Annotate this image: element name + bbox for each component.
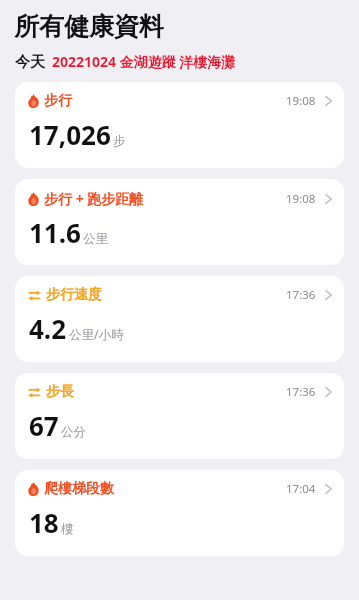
staticText: 所有健康資料 (14, 11, 164, 42)
other: Open details (325, 289, 332, 301)
other: Open details (325, 95, 332, 107)
other: Open details (325, 483, 332, 495)
staticText: 20221024 金湖遊蹤 洋樓海灘 (52, 52, 236, 71)
staticText: 17:36 (286, 287, 316, 303)
staticText: 步 (113, 133, 126, 149)
other: Activity (28, 94, 39, 108)
staticText: 今天 (15, 53, 45, 72)
staticText: 19:08 (286, 93, 316, 109)
staticText: 步行 (44, 92, 72, 110)
staticText: 19:08 (286, 191, 316, 207)
other: Open details (325, 386, 332, 398)
staticText: 步行 + 跑步距離 (44, 189, 144, 208)
staticText: 步行速度 (46, 286, 102, 304)
staticText: 爬樓梯段數 (44, 480, 114, 498)
button[interactable]: Activity (15, 82, 344, 168)
staticText: 樓 (61, 521, 74, 537)
staticText: 公里 (83, 231, 108, 247)
staticText: 17:36 (286, 384, 316, 400)
staticText: 公里/小時 (69, 326, 124, 343)
button[interactable]: Activity (15, 470, 344, 556)
other: Pace (28, 289, 41, 302)
other: Open details (325, 193, 332, 205)
button[interactable]: Pace (15, 373, 344, 459)
staticText: 17,026 (29, 117, 111, 152)
button[interactable]: Activity (15, 179, 344, 265)
other: Activity (28, 192, 39, 206)
staticText: 11.6 (29, 215, 81, 250)
staticText: 18 (29, 505, 59, 540)
other: Activity (28, 482, 39, 496)
staticText: 17:04 (286, 481, 316, 497)
staticText: 步長 (46, 383, 74, 401)
other: Pace (28, 386, 41, 399)
staticText: 67 (29, 408, 59, 443)
staticText: 4.2 (29, 311, 67, 346)
staticText: 公分 (61, 424, 86, 440)
button[interactable]: Pace (15, 276, 344, 362)
